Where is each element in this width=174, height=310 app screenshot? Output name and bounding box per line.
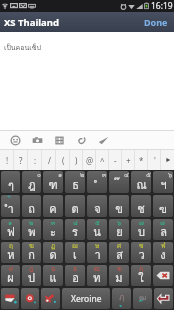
button[interactable]: ล xyxy=(153,219,173,240)
staticText: า xyxy=(94,246,101,263)
staticText: ๓ xyxy=(51,219,56,228)
button[interactable]: ธ xyxy=(65,171,85,193)
button[interactable]: Send xyxy=(98,135,109,146)
button[interactable]: ส xyxy=(109,242,129,263)
button[interactable]: ย xyxy=(109,219,129,240)
button[interactable]: ป xyxy=(22,265,41,286)
staticText: XS Thailand xyxy=(4,16,59,29)
button[interactable]: Attach video xyxy=(54,135,65,146)
staticText: ๔ xyxy=(124,171,129,180)
button[interactable]: + xyxy=(122,150,135,170)
button[interactable]: แ xyxy=(43,265,63,286)
button[interactable]: Enter xyxy=(154,288,173,309)
button[interactable]: ๊ xyxy=(109,171,129,193)
button[interactable]: ด xyxy=(43,242,63,263)
button[interactable]: ช xyxy=(131,195,151,217)
button[interactable]: ร xyxy=(65,219,85,240)
staticText: Xeroine xyxy=(71,293,102,305)
staticText: ) xyxy=(75,155,78,166)
button[interactable]: ) xyxy=(70,150,83,170)
staticText: ง xyxy=(160,246,166,263)
button[interactable]: ฒ xyxy=(133,288,152,309)
button[interactable]: ฑ xyxy=(43,171,63,193)
staticText: ฒ xyxy=(139,291,147,304)
button[interactable]: - xyxy=(109,150,122,170)
button[interactable]: ก xyxy=(22,242,41,263)
button[interactable]: * xyxy=(135,150,148,170)
button[interactable]: ( xyxy=(56,150,70,170)
staticText: ? xyxy=(19,155,23,166)
button[interactable]: ฟ xyxy=(1,219,20,240)
button[interactable]: ใ xyxy=(131,265,151,286)
staticText: ฬ xyxy=(161,242,166,251)
button[interactable]: ะ xyxy=(43,219,63,240)
button[interactable]: ฎ xyxy=(22,171,41,193)
button[interactable]: ท xyxy=(87,265,107,286)
button[interactable]: / xyxy=(42,150,56,170)
button[interactable]: Backspace xyxy=(153,265,173,286)
button[interactable]: ข xyxy=(109,195,129,217)
button[interactable]: Attach file xyxy=(76,135,87,146)
staticText: ๖ xyxy=(117,219,122,228)
button[interactable]: Settings xyxy=(21,288,39,309)
button[interactable]: ๆ xyxy=(1,171,20,193)
staticText: + xyxy=(126,155,131,166)
staticText: : xyxy=(34,155,37,166)
staticText: / xyxy=(48,155,51,166)
button[interactable]: ^ xyxy=(96,150,109,170)
button[interactable]: ง xyxy=(153,242,173,263)
button[interactable]: ำ xyxy=(1,195,20,217)
staticText: อ xyxy=(72,269,79,286)
staticText: ป xyxy=(28,269,35,286)
button[interactable]: Switch layout xyxy=(1,288,19,309)
staticText: ะ xyxy=(50,223,56,240)
staticText: ส xyxy=(116,246,123,263)
staticText: ฮ xyxy=(73,265,77,274)
button[interactable]: บ xyxy=(131,219,151,240)
staticText: จ xyxy=(94,200,101,217)
staticText: ๐ xyxy=(37,171,41,180)
button[interactable]: จ xyxy=(87,195,107,217)
button[interactable]: More symbols xyxy=(161,150,174,170)
button[interactable]: ว xyxy=(131,242,151,263)
button[interactable]: า xyxy=(87,242,107,263)
staticText: ห xyxy=(7,246,15,263)
button[interactable]: อ xyxy=(65,265,85,286)
staticText: ๑ xyxy=(8,219,13,228)
staticText: ข xyxy=(115,200,123,217)
button[interactable]: ํ xyxy=(87,171,107,193)
button[interactable]: ' xyxy=(148,150,161,170)
button[interactable]: ? xyxy=(14,150,28,170)
staticText: * xyxy=(139,155,144,166)
button[interactable]: ! xyxy=(0,150,14,170)
button[interactable]: @ xyxy=(83,150,96,170)
button[interactable]: ต xyxy=(65,195,85,217)
button[interactable]: Voice input xyxy=(41,288,60,309)
button[interactable]: ค xyxy=(43,195,63,217)
button[interactable]: น xyxy=(87,219,107,240)
staticText: น xyxy=(93,223,101,240)
button[interactable]: Insert emoji xyxy=(10,135,21,146)
staticText: ฃ xyxy=(159,200,167,217)
button[interactable]: XS Thailand xyxy=(0,12,65,32)
staticText: ด xyxy=(49,246,57,263)
staticText: ำ xyxy=(7,200,14,217)
button[interactable]: Take photo xyxy=(32,135,43,146)
button[interactable]: ห xyxy=(1,242,20,263)
button[interactable]: ฯ xyxy=(153,171,173,193)
button[interactable]: ถ xyxy=(22,195,41,217)
button[interactable]: Xeroine xyxy=(62,288,110,309)
button[interactable]: พ xyxy=(22,219,41,240)
button[interactable]: Done xyxy=(138,12,174,32)
button[interactable]: ฃ xyxy=(153,195,173,217)
staticText: ๗ xyxy=(139,219,144,228)
staticText: ฆ xyxy=(29,242,34,251)
button[interactable]: ม xyxy=(109,265,129,286)
staticText: ฆ xyxy=(117,265,122,274)
button[interactable]: ฦ xyxy=(112,288,131,309)
button[interactable]: ณ xyxy=(131,171,151,193)
button[interactable]: เ xyxy=(65,242,85,263)
staticText: ฦ xyxy=(139,265,144,274)
button[interactable]: : xyxy=(28,150,42,170)
button[interactable]: ผ xyxy=(1,265,20,286)
